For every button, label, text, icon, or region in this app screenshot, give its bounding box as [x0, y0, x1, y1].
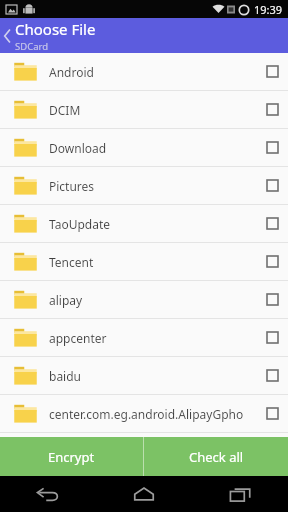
staticText: Download — [49, 140, 107, 156]
staticText: Android — [49, 64, 94, 80]
button[interactable]: TaoUpdate — [0, 205, 288, 242]
staticText: Encrypt — [48, 448, 95, 466]
button[interactable]: appcenter — [0, 319, 288, 356]
button[interactable]: Encrypt — [0, 437, 143, 476]
button[interactable]: Download — [0, 129, 288, 166]
staticText: 19:39 — [254, 2, 283, 17]
button[interactable]: Select Tencent — [256, 243, 288, 280]
staticText: Tencent — [49, 254, 94, 270]
staticText: alipay — [49, 292, 83, 308]
staticText: Pictures — [49, 178, 95, 194]
button[interactable]: alipay — [0, 281, 288, 318]
button[interactable]: Home — [96, 476, 192, 512]
button[interactable]: Tencent — [0, 243, 288, 280]
button[interactable]: center.com.eg.android.AlipayGpho — [0, 395, 288, 432]
button[interactable]: Select TaoUpdate — [256, 205, 288, 242]
button[interactable]: Select baidu — [256, 357, 288, 394]
staticText: TaoUpdate — [49, 216, 111, 232]
button[interactable]: Navigate up — [0, 18, 15, 53]
staticText: appcenter — [49, 330, 107, 346]
button[interactable]: Recent apps — [192, 476, 288, 512]
staticText: Check all — [189, 448, 244, 466]
button[interactable]: Back — [0, 476, 96, 512]
button[interactable]: Check all — [144, 437, 288, 476]
button[interactable]: Select center.com.eg.android.AlipayGpho — [256, 395, 288, 432]
button[interactable]: Pictures — [0, 167, 288, 204]
button[interactable]: DCIM — [0, 91, 288, 128]
button[interactable]: baidu — [0, 357, 288, 394]
staticText: baidu — [49, 368, 82, 384]
button[interactable]: Select DCIM — [256, 91, 288, 128]
button[interactable]: Select Download — [256, 129, 288, 166]
button[interactable]: Select Pictures — [256, 167, 288, 204]
button[interactable]: Android — [0, 53, 288, 90]
staticText: SDCard — [15, 40, 49, 53]
staticText: center.com.eg.android.AlipayGpho — [49, 406, 244, 422]
button[interactable]: Select alipay — [256, 281, 288, 318]
staticText: Choose File — [15, 19, 96, 39]
button[interactable]: Select Android — [256, 53, 288, 90]
button[interactable]: Select appcenter — [256, 319, 288, 356]
staticText: DCIM — [49, 102, 81, 118]
